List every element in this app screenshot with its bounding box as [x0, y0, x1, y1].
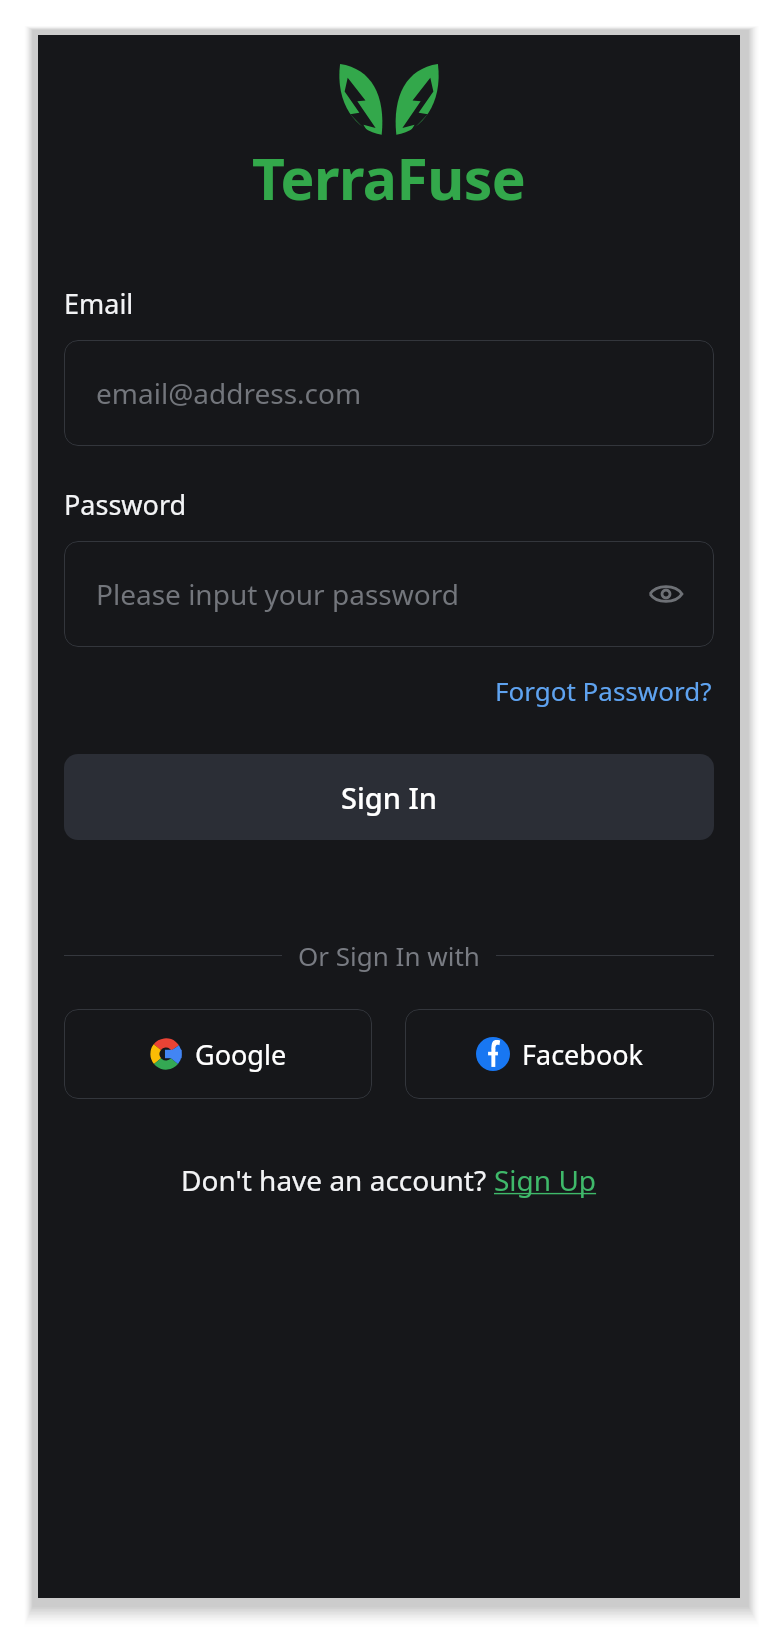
staticText: email@address.com: [96, 374, 362, 412]
staticText: Email: [64, 285, 134, 322]
staticText: Forgot Password?: [495, 673, 712, 708]
button[interactable]: Forgot Password?: [493, 669, 714, 712]
staticText: Facebook: [522, 1036, 644, 1073]
staticText: Don't have an account?: [181, 1161, 494, 1199]
button[interactable]: Please input your password: [64, 541, 714, 647]
button[interactable]: Sign Up: [494, 1161, 597, 1199]
staticText: Please input your password: [96, 575, 459, 613]
staticText: Sign In: [341, 778, 437, 817]
staticText: TerraFuse: [252, 139, 526, 217]
button[interactable]: Sign In: [64, 754, 714, 840]
button[interactable]: Google: [64, 1009, 372, 1099]
staticText: Password: [64, 486, 187, 523]
staticText: Google: [195, 1036, 287, 1073]
button[interactable]: Show password: [642, 570, 690, 618]
staticText: Sign Up: [494, 1161, 597, 1199]
button[interactable]: Facebook: [405, 1009, 714, 1099]
button[interactable]: email@address.com: [64, 340, 714, 446]
staticText: Or Sign In with: [298, 938, 480, 973]
